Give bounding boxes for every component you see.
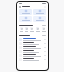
button[interactable] <box>42 25 46 26</box>
button[interactable] <box>19 16 32 22</box>
button[interactable]: Category 1 <box>19 27 23 32</box>
button[interactable]: Category 4 <box>35 27 40 32</box>
button[interactable]: Menu <box>19 6 21 8</box>
button[interactable] <box>17 53 48 57</box>
button[interactable]: Category 5 <box>41 27 46 32</box>
button[interactable] <box>33 9 46 15</box>
button[interactable]: Category 3 <box>29 27 34 32</box>
button[interactable] <box>17 49 48 53</box>
button[interactable] <box>17 45 48 49</box>
button[interactable] <box>33 16 46 22</box>
button[interactable] <box>17 41 48 45</box>
button[interactable] <box>17 37 48 41</box>
button[interactable] <box>17 57 48 61</box>
button[interactable] <box>19 9 32 15</box>
button[interactable]: Category 2 <box>24 27 28 32</box>
button[interactable] <box>42 35 46 36</box>
